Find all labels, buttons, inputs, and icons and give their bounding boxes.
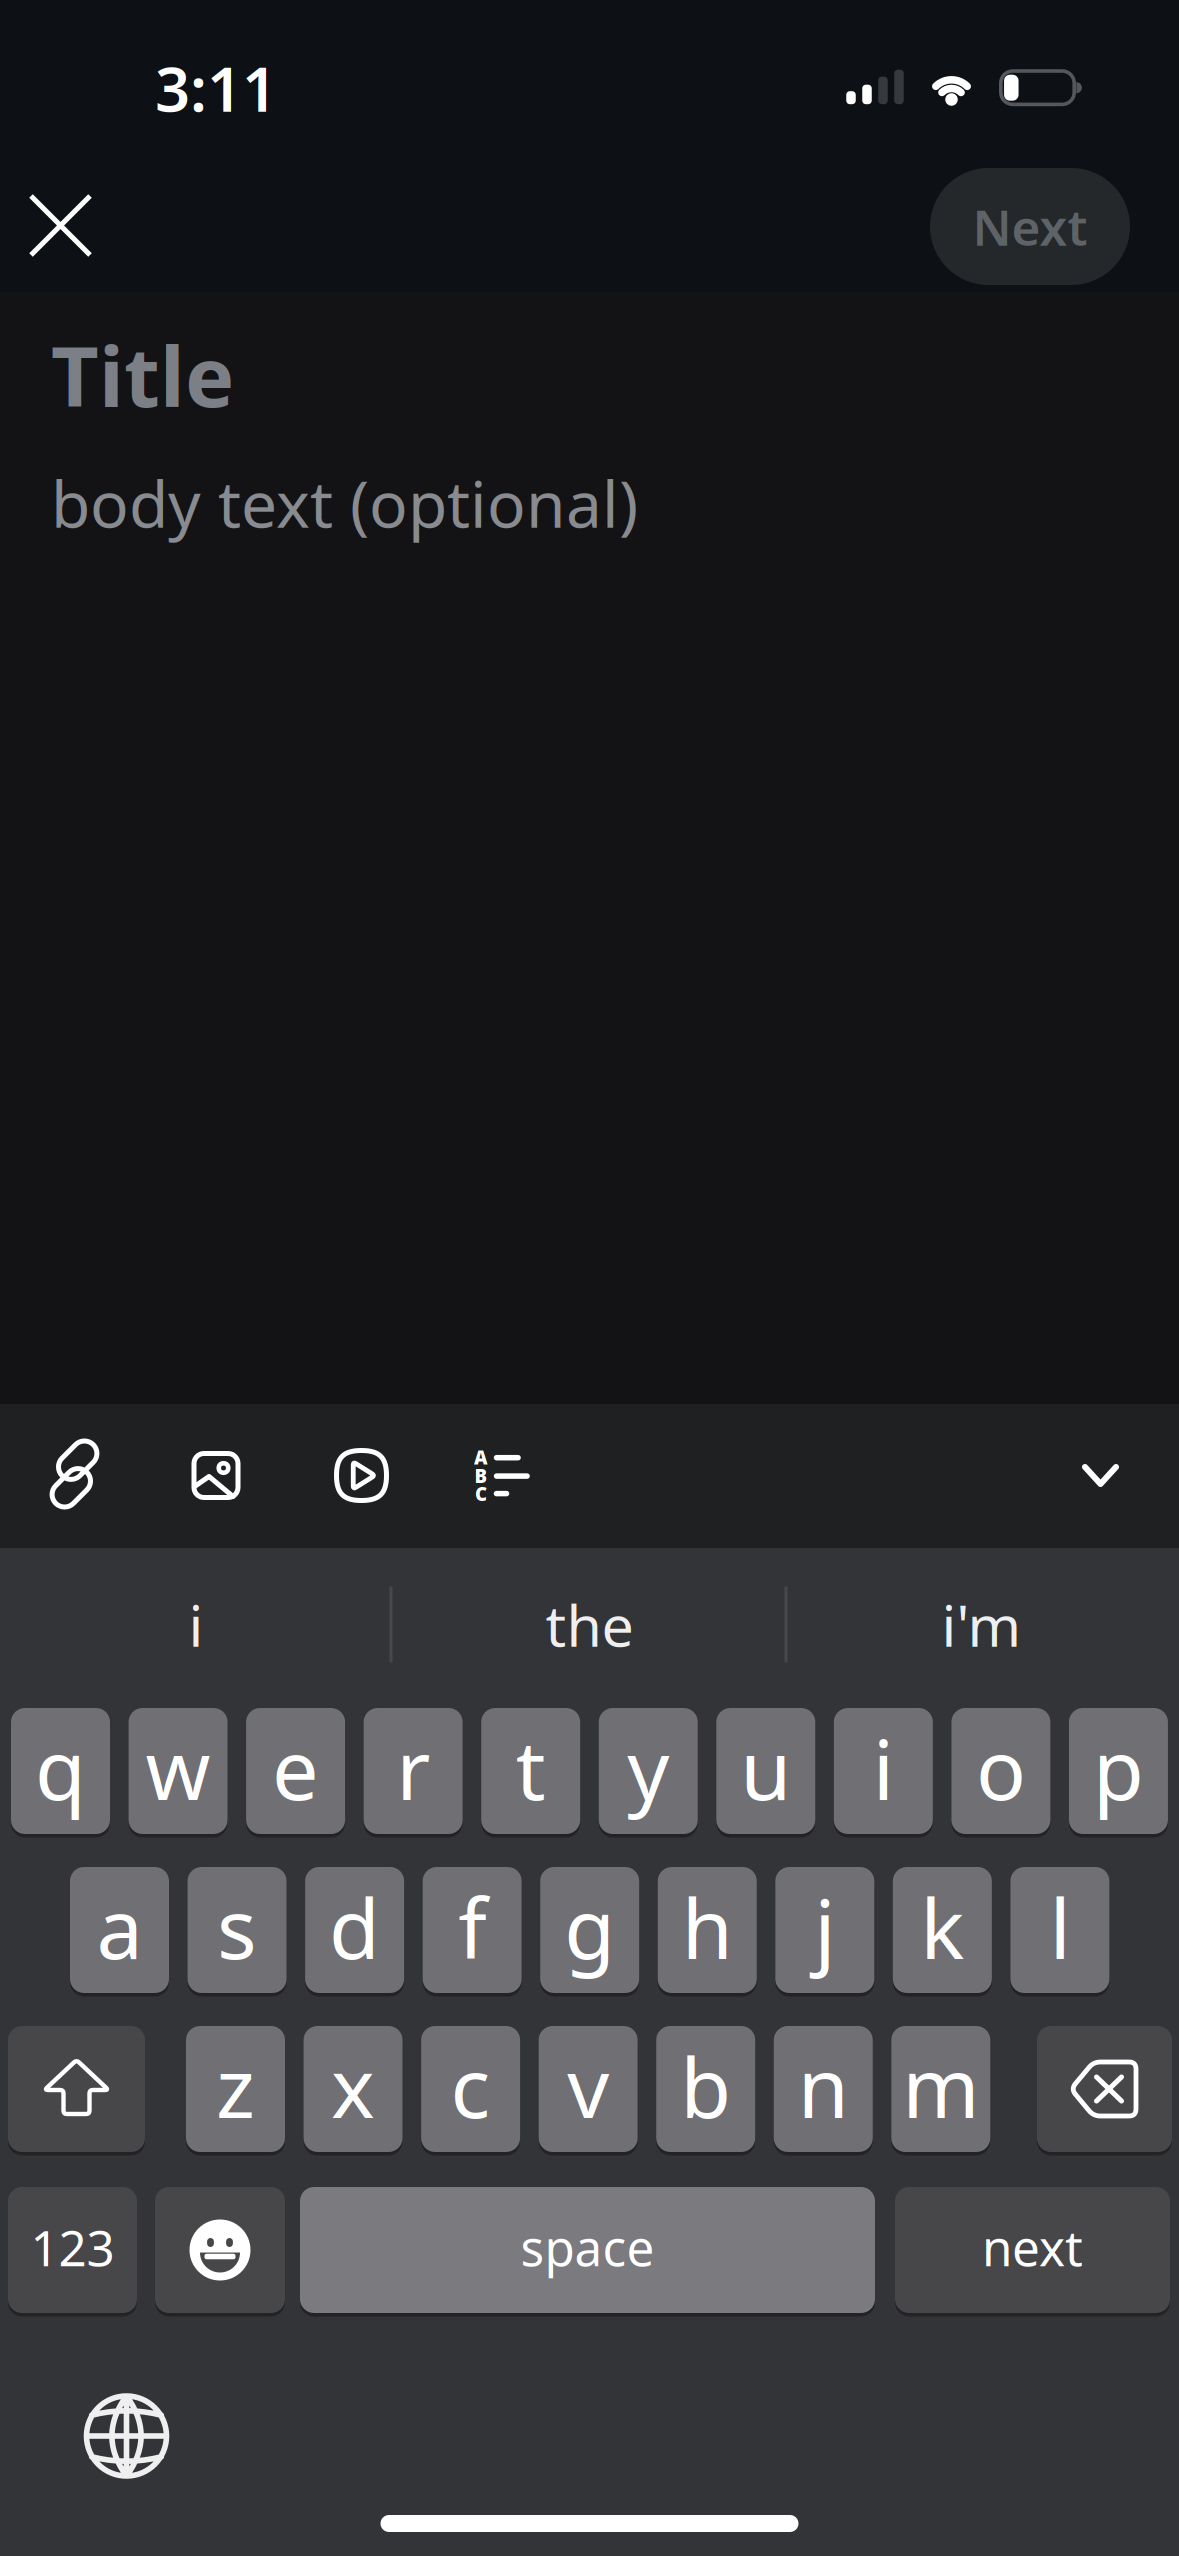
staticText: t — [516, 1713, 546, 1823]
button[interactable]: Dismiss keyboard — [1061, 1443, 1140, 1508]
staticText: i — [873, 1713, 894, 1823]
staticText: q — [35, 1713, 86, 1823]
button[interactable]: i — [6, 1569, 386, 1679]
staticText: i — [188, 1586, 203, 1662]
staticText: space — [520, 2214, 654, 2280]
button[interactable]: h — [658, 1865, 757, 1995]
button[interactable]: Change keyboard — [70, 2380, 182, 2492]
staticText: p — [1093, 1713, 1144, 1823]
staticText: 3:11 — [155, 47, 277, 129]
button[interactable]: Formatting — [450, 1430, 550, 1520]
button[interactable]: w — [129, 1706, 228, 1836]
staticText: h — [682, 1872, 733, 1982]
button[interactable]: n — [774, 2024, 873, 2154]
button[interactable]: next — [895, 2185, 1170, 2315]
staticText: y — [627, 1713, 669, 1823]
button[interactable]: z — [186, 2024, 285, 2154]
staticText: b — [680, 2031, 731, 2141]
button[interactable]: Shift — [8, 2024, 145, 2154]
staticText: n — [798, 2031, 849, 2141]
staticText: k — [920, 1872, 964, 1982]
button[interactable]: t — [481, 1706, 580, 1836]
staticText: B — [474, 1463, 487, 1488]
button[interactable]: l — [1010, 1865, 1109, 1995]
button[interactable]: v — [539, 2024, 638, 2154]
button[interactable]: e — [246, 1706, 345, 1836]
button[interactable]: x — [304, 2024, 403, 2154]
button[interactable]: m — [891, 2024, 990, 2154]
staticText: x — [331, 2031, 375, 2141]
staticText: r — [396, 1713, 430, 1823]
button[interactable]: Close — [7, 172, 114, 279]
staticText: body text (optional) — [51, 460, 638, 545]
button[interactable]: Emoji — [155, 2185, 285, 2315]
button[interactable]: space — [300, 2185, 875, 2315]
staticText: g — [564, 1872, 615, 1982]
staticText: j — [814, 1872, 835, 1982]
staticText: w — [146, 1713, 211, 1823]
staticText: z — [216, 2031, 255, 2141]
staticText: l — [1049, 1872, 1070, 1982]
button[interactable]: c — [421, 2024, 520, 2154]
button[interactable]: i — [834, 1706, 933, 1836]
button[interactable]: i'm — [791, 1569, 1171, 1679]
staticText: A — [474, 1445, 488, 1470]
button[interactable]: o — [951, 1706, 1050, 1836]
button[interactable]: u — [716, 1706, 815, 1836]
button[interactable]: s — [188, 1865, 287, 1995]
button[interactable]: a — [70, 1865, 169, 1995]
staticText: C — [475, 1481, 487, 1506]
button[interactable]: Next — [930, 168, 1130, 285]
staticText: u — [740, 1713, 791, 1823]
staticText: i'm — [941, 1586, 1021, 1662]
button[interactable]: Add link — [29, 1423, 119, 1525]
staticText: d — [329, 1872, 380, 1982]
button[interactable]: y — [599, 1706, 698, 1836]
button[interactable]: 123 — [8, 2185, 137, 2315]
button[interactable]: p — [1069, 1706, 1168, 1836]
button[interactable]: k — [893, 1865, 992, 1995]
staticText: s — [217, 1872, 257, 1982]
button[interactable]: the — [399, 1569, 779, 1679]
staticText: e — [272, 1713, 319, 1823]
button[interactable]: d — [305, 1865, 404, 1995]
button[interactable]: Delete — [1037, 2024, 1172, 2154]
staticText: o — [976, 1713, 1026, 1823]
staticText: 123 — [30, 2214, 114, 2280]
button[interactable]: g — [540, 1865, 639, 1995]
staticText: a — [96, 1872, 142, 1982]
staticText: c — [451, 2031, 491, 2141]
button[interactable]: b — [656, 2024, 755, 2154]
button[interactable]: f — [423, 1865, 522, 1995]
button[interactable]: r — [364, 1706, 463, 1836]
button[interactable]: Add video — [314, 1428, 409, 1523]
staticText: f — [458, 1872, 486, 1982]
staticText: m — [902, 2031, 979, 2141]
button[interactable]: j — [775, 1865, 874, 1995]
staticText: Next — [972, 194, 1087, 259]
staticText: v — [567, 2031, 609, 2141]
button[interactable]: Add image — [171, 1431, 260, 1520]
button[interactable]: q — [11, 1706, 110, 1836]
staticText: next — [982, 2214, 1083, 2280]
staticText: the — [545, 1586, 633, 1662]
staticText: Title — [51, 320, 234, 430]
